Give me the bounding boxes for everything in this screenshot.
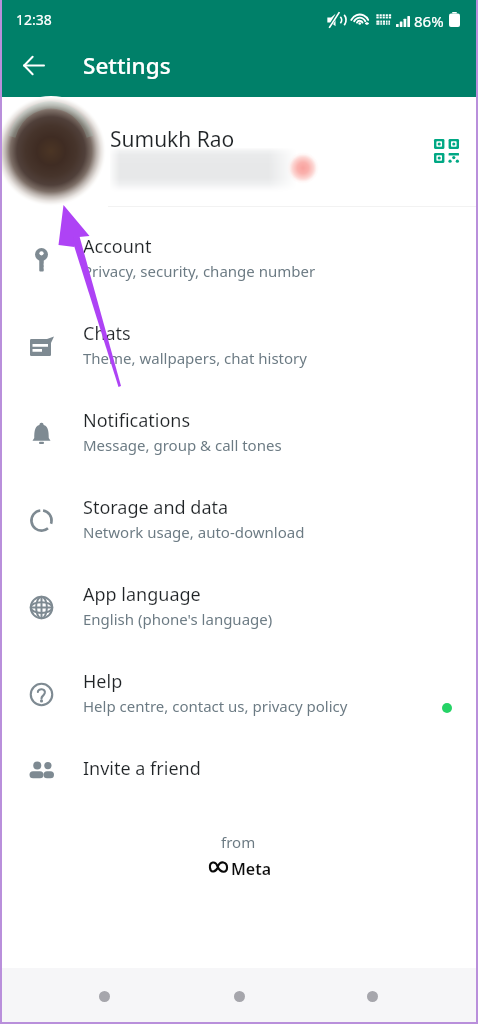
staticText: Sumukh Rao <box>110 125 235 154</box>
staticText: Notifications <box>83 408 191 433</box>
staticText: English (phone's language) <box>83 609 273 629</box>
staticText: Help centre, contact us, privacy policy <box>83 696 348 716</box>
button[interactable]: Sumukh Rao <box>0 97 478 207</box>
button[interactable]: Back <box>9 41 57 89</box>
button[interactable]: Home <box>213 968 265 1024</box>
staticText: Help <box>83 669 123 694</box>
staticText: Theme, wallpapers, chat history <box>83 348 307 368</box>
staticText: App language <box>83 582 201 607</box>
staticText: Message, group & call tones <box>83 435 282 455</box>
button[interactable]: Invite a friend <box>0 748 478 835</box>
staticText: Meta <box>231 858 272 880</box>
button[interactable]: Back <box>346 968 398 1024</box>
button[interactable]: Notifications <box>0 400 478 487</box>
button[interactable]: QR code <box>420 125 472 177</box>
staticText: Storage and data <box>83 495 229 520</box>
button[interactable]: App language <box>0 574 478 661</box>
staticText: from <box>221 832 256 852</box>
button[interactable]: Chats <box>0 313 478 400</box>
button[interactable]: Account <box>0 226 478 313</box>
staticText: 12:38 <box>16 10 52 29</box>
staticText: Account <box>83 234 152 259</box>
staticText: Privacy, security, change number <box>83 261 316 281</box>
button[interactable]: Help <box>0 661 478 748</box>
staticText: Settings <box>83 50 171 81</box>
button[interactable]: Recent apps <box>78 968 130 1024</box>
staticText: Invite a friend <box>83 756 201 781</box>
staticText: 86% <box>414 11 444 31</box>
button[interactable]: Storage and data <box>0 487 478 574</box>
staticText: Network usage, auto-download <box>83 522 305 542</box>
staticText: Chats <box>83 321 131 346</box>
